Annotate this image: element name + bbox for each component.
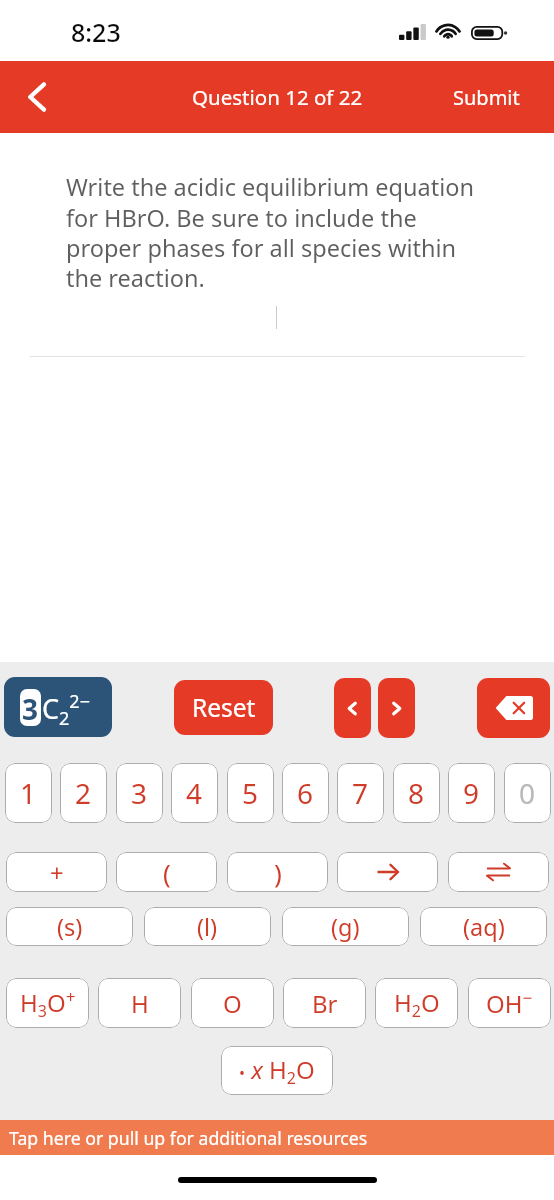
- button[interactable]: H2O: [375, 978, 458, 1028]
- button[interactable]: Tap here or pull up for additional resou…: [0, 1120, 554, 1155]
- staticText: (: [163, 855, 171, 890]
- button[interactable]: +: [6, 852, 107, 892]
- staticText: Write the acidic equilibrium equation fo…: [66, 171, 486, 293]
- staticText: (aq): [463, 911, 505, 943]
- button[interactable]: 9: [448, 763, 495, 823]
- button[interactable]: 1: [5, 763, 52, 823]
- staticText: 2: [75, 774, 92, 812]
- staticText: H2O: [394, 986, 440, 1021]
- button[interactable]: Next: [378, 678, 415, 738]
- staticText: 1: [20, 774, 37, 812]
- button[interactable]: 2: [60, 763, 107, 823]
- button[interactable]: Br: [283, 978, 366, 1028]
- staticText: 5: [242, 774, 259, 812]
- button[interactable]: 8: [393, 763, 440, 823]
- staticText: Tap here or pull up for additional resou…: [9, 1126, 368, 1150]
- button[interactable]: 5: [227, 763, 274, 823]
- staticText: 7: [352, 774, 369, 812]
- button[interactable]: Backspace: [477, 678, 550, 738]
- button[interactable]: ): [227, 852, 328, 892]
- staticText: O: [223, 987, 242, 1020]
- staticText: • x H2O: [239, 1053, 315, 1088]
- button[interactable]: Reset: [174, 680, 273, 735]
- staticText: Submit: [453, 84, 520, 111]
- staticText: 8: [408, 774, 425, 812]
- staticText: ): [274, 855, 282, 890]
- button[interactable]: OH−: [468, 978, 551, 1028]
- staticText: (g): [331, 911, 360, 943]
- staticText: OH−: [486, 986, 533, 1020]
- button[interactable]: Equilibrium arrow: [448, 852, 549, 892]
- button[interactable]: H3O+: [6, 978, 89, 1028]
- button[interactable]: (g): [282, 907, 409, 946]
- staticText: H3O+: [20, 985, 76, 1022]
- button[interactable]: Yields arrow: [337, 852, 438, 892]
- button[interactable]: (s): [6, 907, 133, 946]
- staticText: (l): [197, 911, 218, 943]
- staticText: (s): [57, 911, 83, 943]
- staticText: 9: [463, 774, 480, 812]
- staticText: 3: [131, 774, 148, 812]
- button[interactable]: 7: [337, 763, 384, 823]
- button[interactable]: Back: [8, 61, 66, 133]
- button[interactable]: (l): [144, 907, 271, 946]
- button[interactable]: 0: [504, 763, 551, 823]
- button[interactable]: 3: [116, 763, 163, 823]
- staticText: 0: [519, 774, 536, 812]
- staticText: H: [131, 987, 149, 1020]
- button[interactable]: 6: [282, 763, 329, 823]
- staticText: 3: [22, 690, 39, 728]
- button[interactable]: 3: [4, 677, 112, 737]
- button[interactable]: (: [116, 852, 217, 892]
- button[interactable]: • x H2O: [221, 1046, 333, 1095]
- staticText: Reset: [192, 691, 256, 724]
- button[interactable]: H: [98, 978, 181, 1028]
- button[interactable]: Submit: [430, 61, 554, 133]
- staticText: Br: [312, 987, 338, 1020]
- button[interactable]: Previous: [334, 678, 371, 738]
- staticText: +: [50, 856, 64, 889]
- button[interactable]: 4: [171, 763, 218, 823]
- button[interactable]: O: [191, 978, 274, 1028]
- button[interactable]: (aq): [420, 907, 547, 946]
- staticText: 8:23: [71, 15, 121, 49]
- staticText: 6: [297, 774, 314, 812]
- staticText: C22−: [42, 689, 90, 730]
- staticText: Question 12 of 22: [192, 83, 363, 111]
- staticText: 4: [186, 774, 203, 812]
